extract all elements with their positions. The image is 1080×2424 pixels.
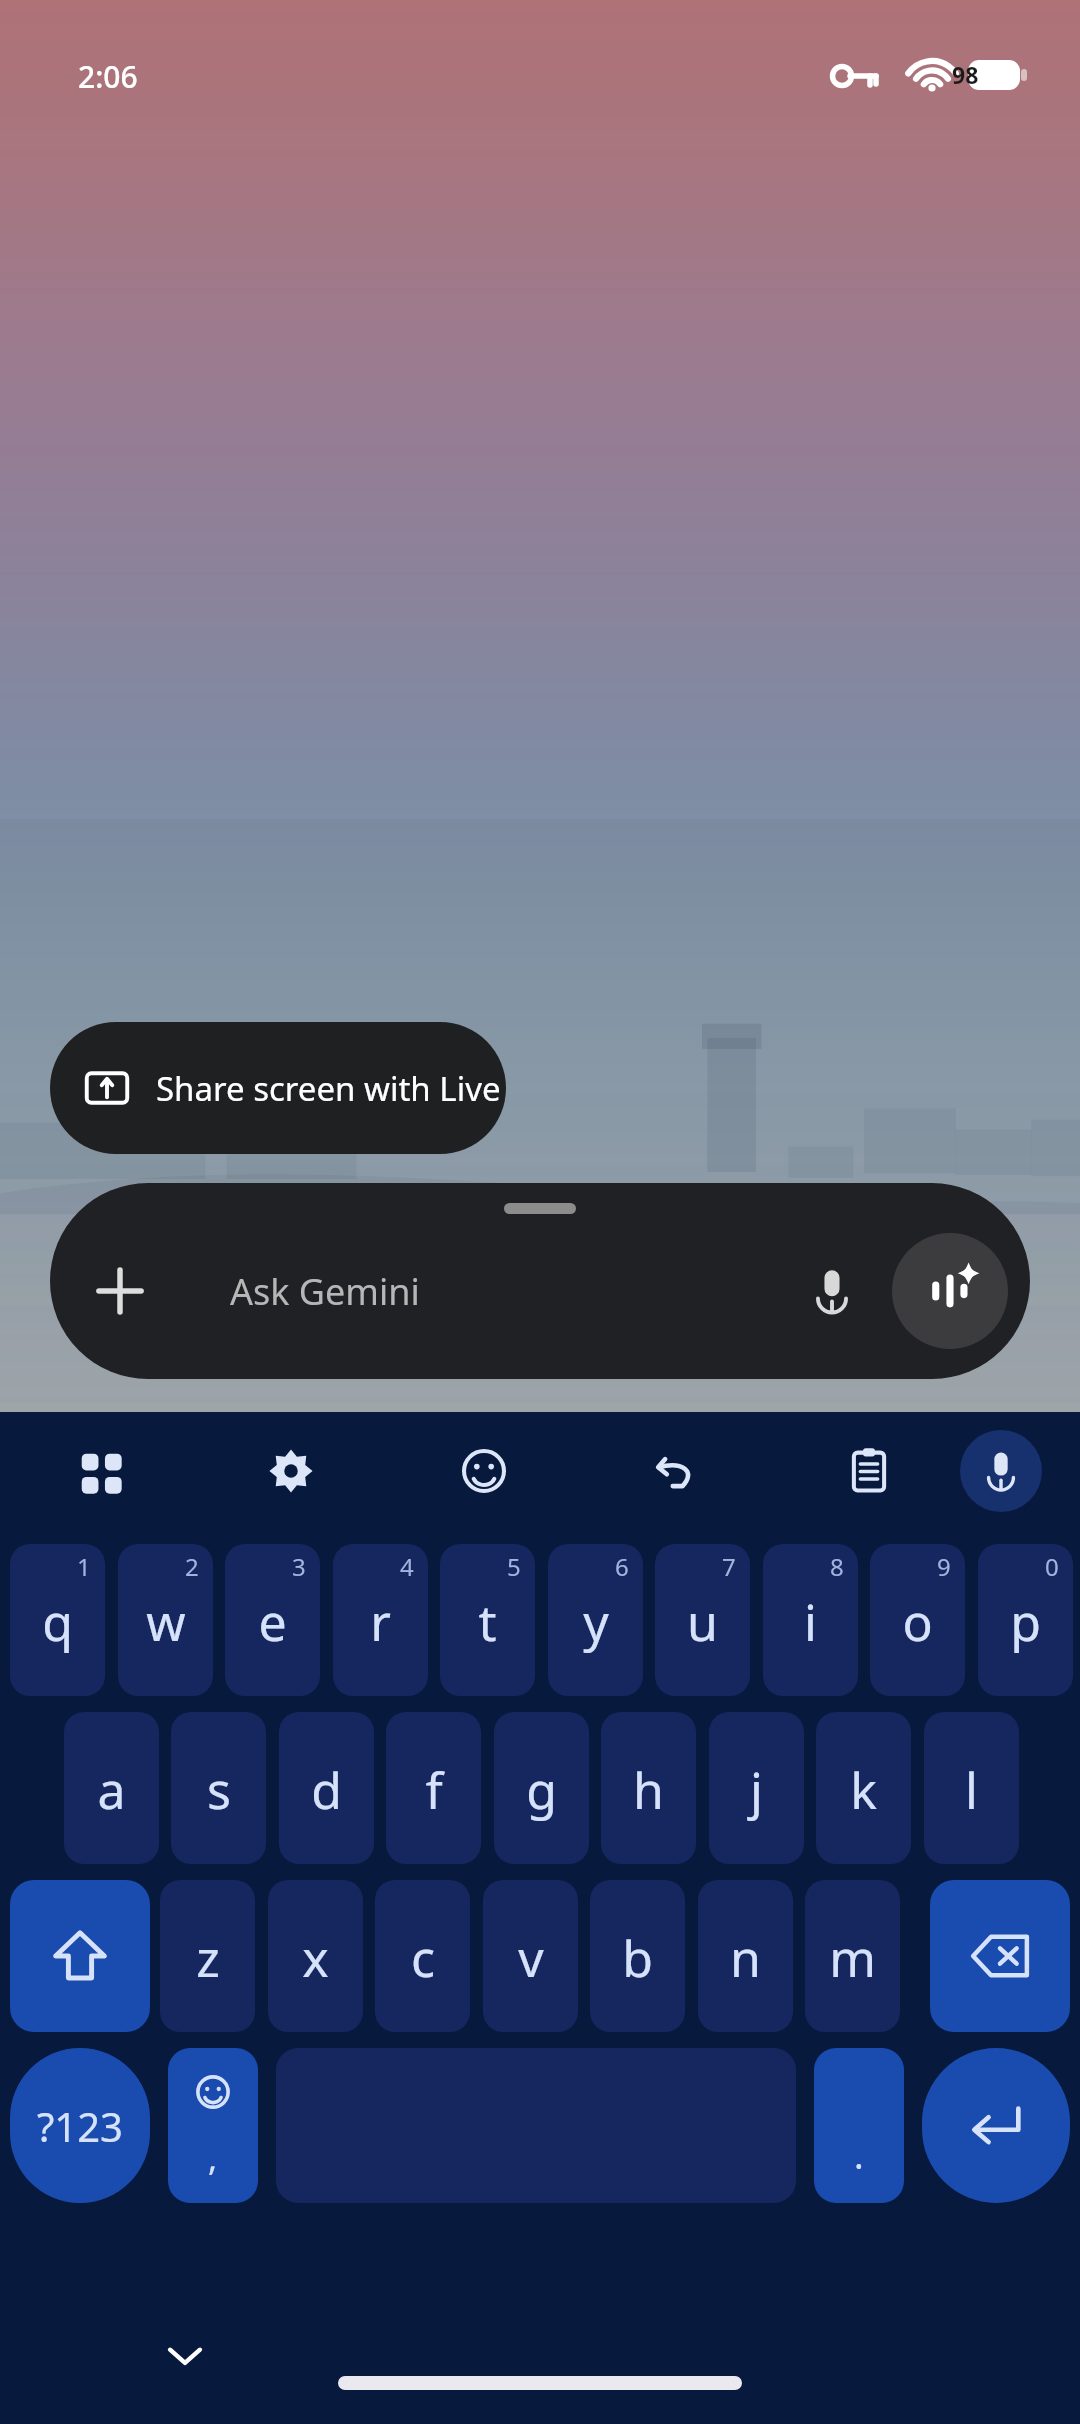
button[interactable]: Gemini Live [892,1233,1008,1349]
staticText: l [965,1756,978,1824]
button[interactable]: Clipboard [828,1430,910,1512]
staticText: u [687,1588,718,1656]
button[interactable]: Settings [250,1430,332,1512]
staticText: . [854,2131,864,2180]
staticText: j [750,1756,763,1824]
button[interactable]: s [171,1712,266,1864]
staticText: 2:06 [78,56,138,97]
button[interactable]: c [375,1880,470,2032]
staticText: 98 [952,59,979,90]
staticText: 8 [830,1550,844,1583]
button[interactable]: o [870,1544,965,1696]
staticText: b [622,1924,653,1992]
staticText: a [97,1756,126,1824]
button[interactable]: Add attachment [70,1241,170,1341]
button[interactable]: m [805,1880,900,2032]
staticText: , [208,2135,218,2181]
button[interactable]: a [64,1712,159,1864]
button[interactable]: n [698,1880,793,2032]
button[interactable]: d [279,1712,374,1864]
staticText: Share screen with Live [156,1066,501,1111]
staticText: v [518,1924,544,1992]
staticText: c [411,1924,435,1992]
button[interactable]: h [601,1712,696,1864]
button[interactable]: Undo [635,1430,717,1512]
button[interactable]: Share screen with Live [50,1022,506,1154]
button[interactable]: ?123 [10,2048,150,2203]
button[interactable]: Shift [10,1880,150,2032]
button[interactable]: g [494,1712,589,1864]
staticText: w [146,1588,186,1656]
button[interactable]: j [709,1712,804,1864]
button[interactable]: Emoji [443,1430,525,1512]
staticText: x [302,1924,329,1992]
button[interactable]: b [590,1880,685,2032]
staticText: 7 [722,1550,736,1583]
staticText: 2 [185,1550,199,1583]
button[interactable]: q [10,1544,105,1696]
staticText: y [583,1588,609,1656]
button[interactable]: w [118,1544,213,1696]
staticText: f [425,1756,443,1824]
staticText: Ask Gemini [230,1267,420,1316]
button[interactable]: Keyboard modes [58,1430,140,1512]
staticText: o [902,1588,933,1656]
staticText: 9 [937,1550,951,1583]
button[interactable]: p [978,1544,1073,1696]
button[interactable]: k [816,1712,911,1864]
button[interactable]: Voice typing [960,1430,1042,1512]
button[interactable]: f [386,1712,481,1864]
staticText: m [829,1924,876,1992]
button[interactable]: Emoji and comma [168,2048,258,2203]
button[interactable]: y [548,1544,643,1696]
button[interactable]: x [268,1880,363,2032]
button[interactable]: Enter [922,2048,1070,2203]
button[interactable]: l [924,1712,1019,1864]
staticText: p [1010,1588,1041,1656]
staticText: r [370,1588,391,1656]
button[interactable]: u [655,1544,750,1696]
button[interactable]: Voice input [784,1243,880,1339]
staticText: s [207,1756,231,1824]
button[interactable]: v [483,1880,578,2032]
button[interactable]: z [160,1880,255,2032]
staticText: 4 [400,1550,414,1583]
button[interactable]: r [333,1544,428,1696]
staticText: t [478,1588,497,1656]
button[interactable]: . [814,2048,904,2203]
staticText: q [42,1588,73,1656]
button[interactable]: Hide keyboard [140,2310,230,2400]
staticText: g [526,1756,557,1824]
staticText: 0 [1045,1550,1059,1583]
staticText: d [311,1756,342,1824]
button[interactable]: i [763,1544,858,1696]
staticText: 5 [507,1550,521,1583]
staticText: 1 [77,1550,91,1583]
staticText: k [850,1756,877,1824]
staticText: 3 [292,1550,306,1583]
staticText: n [730,1924,761,1992]
button[interactable]: e [225,1544,320,1696]
staticText: e [258,1588,287,1656]
staticText: h [633,1756,664,1824]
button[interactable]: Backspace [930,1880,1070,2032]
staticText: ?123 [37,2099,123,2153]
staticText: i [804,1588,817,1656]
button[interactable]: t [440,1544,535,1696]
staticText: 6 [615,1550,629,1583]
staticText: z [196,1924,220,1992]
